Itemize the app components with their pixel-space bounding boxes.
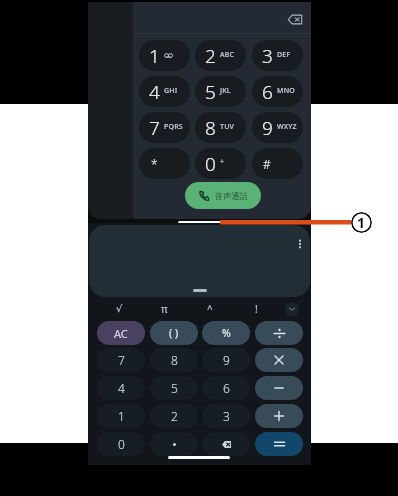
button[interactable]: 4 (139, 76, 190, 107)
button[interactable]: # (252, 148, 303, 179)
staticText: 1 (118, 408, 125, 424)
staticText: 5 (171, 380, 178, 396)
staticText: GHI (164, 86, 178, 96)
staticText: 2 (171, 408, 178, 424)
button[interactable]: 1 (139, 40, 190, 71)
button[interactable] (255, 404, 303, 428)
staticText: WXYZ (277, 122, 297, 132)
staticText: 1 (357, 213, 366, 232)
button[interactable] (255, 432, 303, 456)
button[interactable]: More options (291, 235, 309, 253)
staticText: ! (255, 302, 258, 316)
button[interactable]: Delete (202, 432, 250, 456)
staticText: + (220, 157, 225, 167)
staticText: 2 (205, 43, 216, 69)
staticText: 6 (223, 380, 230, 396)
staticText: 3 (223, 408, 230, 424)
staticText: PQRS (164, 122, 183, 132)
staticText: DEF (277, 50, 291, 60)
staticText: # (263, 156, 271, 172)
button[interactable]: 2 (150, 404, 198, 428)
staticText: π (161, 302, 168, 316)
staticText: 0 (118, 436, 125, 452)
button[interactable]: 7 (97, 348, 145, 372)
staticText: MNO (277, 86, 295, 96)
staticText: 1 (149, 43, 160, 69)
button[interactable]: 5 (150, 376, 198, 400)
button[interactable]: Expand (285, 302, 299, 316)
staticText: 7 (118, 352, 125, 368)
staticText: 9 (262, 115, 273, 141)
button[interactable]: 0 (195, 148, 246, 179)
button[interactable]: % (202, 321, 250, 345)
button[interactable]: 3 (252, 40, 303, 71)
button[interactable] (255, 321, 303, 345)
button[interactable]: 9 (252, 112, 303, 143)
button[interactable]: 6 (252, 76, 303, 107)
button[interactable]: 音声通話 (185, 182, 261, 209)
staticText: ABC (220, 50, 235, 60)
staticText: JKL (220, 86, 231, 96)
staticText: 5 (205, 79, 216, 105)
staticText: √ (116, 303, 123, 315)
button[interactable]: √ (103, 300, 135, 318)
staticText: ^ (207, 302, 213, 316)
button[interactable]: 0 (97, 432, 145, 456)
button[interactable]: * (139, 148, 190, 179)
button[interactable]: ( ) (150, 321, 198, 345)
button[interactable]: 7 (139, 112, 190, 143)
staticText: AC (114, 326, 128, 341)
staticText: ( ) (169, 326, 179, 340)
staticText: * (151, 156, 158, 172)
staticText: 7 (149, 115, 160, 141)
button[interactable]: AC (97, 321, 145, 345)
button[interactable]: 6 (202, 376, 250, 400)
button[interactable]: 8 (195, 112, 246, 143)
button[interactable]: 2 (195, 40, 246, 71)
button[interactable]: 5 (195, 76, 246, 107)
staticText: 9 (223, 352, 230, 368)
button[interactable]: Backspace (283, 7, 307, 31)
staticText: TUV (220, 122, 235, 132)
button[interactable]: ! (240, 300, 272, 318)
staticText: 6 (262, 79, 273, 105)
staticText: 8 (171, 352, 178, 368)
staticText: 3 (262, 43, 273, 69)
staticText: 0 (205, 151, 216, 177)
button[interactable] (150, 432, 198, 456)
other: Delete (222, 441, 231, 448)
button[interactable] (255, 348, 303, 372)
button[interactable]: 4 (97, 376, 145, 400)
button[interactable]: π (148, 300, 180, 318)
staticText: 8 (205, 115, 216, 141)
button[interactable] (255, 376, 303, 400)
button[interactable]: 9 (202, 348, 250, 372)
staticText: 音声通話 (215, 191, 248, 201)
staticText: 4 (149, 79, 160, 105)
staticText: 4 (118, 380, 125, 396)
button[interactable]: 1 (97, 404, 145, 428)
button[interactable]: 3 (202, 404, 250, 428)
button[interactable]: ^ (194, 300, 226, 318)
staticText: % (222, 326, 231, 340)
button[interactable]: 8 (150, 348, 198, 372)
